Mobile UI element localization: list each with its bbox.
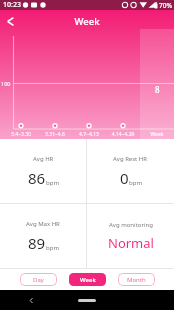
button[interactable]: Week [69,273,106,286]
staticText: 8 [155,84,160,95]
button[interactable]: Back [25,294,37,306]
button[interactable]: Avg monitoring [87,204,174,268]
button[interactable]: Back [0,11,21,32]
staticText: 89 [28,233,46,253]
staticText: Week [140,131,174,138]
staticText: Avg Max HR [26,220,60,228]
staticText: 3.31~4.6 [38,131,72,138]
button[interactable]: Avg Max HR [0,204,86,268]
staticText: bpm [46,244,59,252]
staticText: bpm [46,179,59,187]
staticText: Avg HR [33,155,54,163]
staticText: 70% [159,1,172,10]
staticText: 86 [28,168,46,188]
staticText: Avg Rest HR [113,155,148,163]
staticText: Month [127,276,146,284]
staticText: 3.4~3.30 [4,131,38,138]
staticText: 4.7~4.13 [72,131,106,138]
staticText: 4.14~4.20 [106,131,140,138]
staticText: Normal [108,234,154,252]
staticText: 100 [1,80,11,87]
button[interactable]: Home [78,299,96,302]
staticText: 10:23 [3,0,21,10]
staticText: Avg monitoring [109,221,153,229]
staticText: Week [80,276,96,284]
button[interactable]: Month [118,273,155,286]
staticText: Week [21,15,153,28]
staticText: 0 [120,168,129,188]
staticText: Day [33,276,44,284]
button[interactable]: Avg Rest HR [87,139,174,203]
button[interactable]: Day [20,273,57,286]
button[interactable]: Avg HR [0,139,86,203]
staticText: bpm [129,179,142,187]
